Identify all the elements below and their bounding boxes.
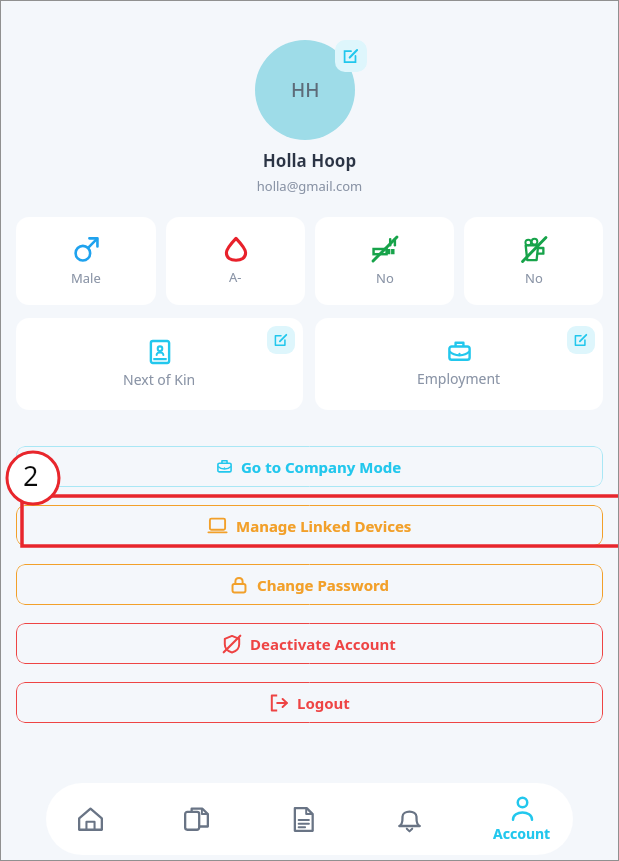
button[interactable]: Manage Linked Devices bbox=[16, 505, 603, 546]
staticText: Next of Kin bbox=[123, 370, 196, 389]
staticText: Account bbox=[493, 824, 551, 843]
button[interactable]: Edit Employment bbox=[567, 326, 595, 354]
button[interactable]: Logout bbox=[16, 682, 603, 723]
button[interactable]: Home bbox=[66, 783, 114, 855]
staticText: Manage Linked Devices bbox=[236, 516, 412, 536]
staticText: Change Password bbox=[257, 575, 389, 595]
button[interactable]: Edit profile bbox=[335, 40, 367, 72]
button[interactable]: Edit Next of Kin bbox=[267, 326, 295, 354]
staticText: A- bbox=[229, 268, 242, 286]
staticText: Holla Hoop bbox=[0, 149, 619, 172]
staticText: HH bbox=[291, 77, 320, 103]
staticText: Deactivate Account bbox=[250, 634, 396, 654]
staticText: Logout bbox=[297, 693, 350, 713]
button[interactable]: HH bbox=[255, 40, 355, 140]
staticText: Employment bbox=[417, 369, 501, 388]
button[interactable]: No bbox=[315, 217, 454, 305]
button[interactable]: Files bbox=[172, 783, 220, 855]
staticText: holla@gmail.com bbox=[0, 177, 619, 195]
button[interactable]: A- bbox=[166, 217, 305, 305]
button[interactable]: Account bbox=[491, 783, 553, 855]
button[interactable]: Reports bbox=[279, 783, 327, 855]
button[interactable]: Go to Company Mode bbox=[16, 446, 603, 487]
button[interactable]: No bbox=[464, 217, 603, 305]
button[interactable]: Male bbox=[16, 217, 156, 305]
button[interactable]: Notifications bbox=[385, 783, 433, 855]
staticText: 2 bbox=[23, 457, 39, 494]
staticText: No bbox=[525, 269, 543, 287]
button[interactable]: Employment bbox=[315, 318, 603, 410]
button[interactable]: Deactivate Account bbox=[16, 623, 603, 664]
button[interactable]: Change Password bbox=[16, 564, 603, 605]
staticText: Male bbox=[71, 269, 101, 287]
button[interactable]: Next of Kin bbox=[16, 318, 303, 410]
staticText: No bbox=[376, 269, 394, 287]
staticText: Go to Company Mode bbox=[241, 457, 402, 477]
